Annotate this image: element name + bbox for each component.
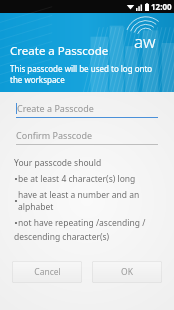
button[interactable]: Cancel [12,261,82,283]
staticText: Confirm Passcode [16,129,93,141]
button[interactable]: OK [92,261,162,283]
button[interactable]: Create a Passcode [16,102,158,118]
staticText: aw [134,30,156,53]
staticText: OK [121,266,133,278]
staticText: 12:00 [151,1,172,12]
staticText: be at least 4 character(s) long [18,173,136,185]
staticText: Create a Passcode [17,102,94,114]
staticText: This passcode will be used to log onto t… [10,63,166,85]
staticText: Cancel [34,266,61,278]
staticText: Your passcode should [14,157,102,169]
button[interactable]: Confirm Passcode [16,129,158,145]
staticText: Create a Passcode [10,43,109,59]
staticText: have at least a number and an alphabet [18,189,160,213]
staticText: not have repeating /ascending / [18,217,146,229]
staticText: descending character(s) [14,231,110,243]
